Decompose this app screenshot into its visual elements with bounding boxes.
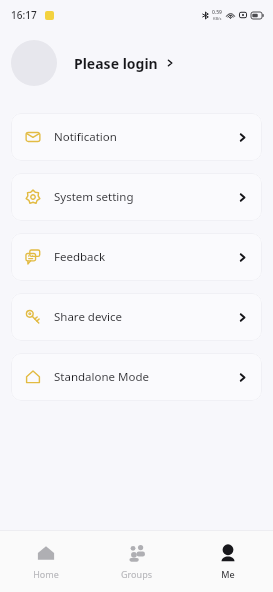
button[interactable]: Me (182, 531, 273, 592)
staticText: Notification (54, 129, 117, 145)
staticText: 16:17 (11, 8, 37, 22)
staticText: Standalone Mode (54, 369, 150, 385)
button[interactable]: Notification (11, 113, 262, 161)
button[interactable]: Share device (11, 293, 262, 341)
staticText: Home (33, 568, 59, 580)
staticText: Please login (74, 54, 158, 73)
button[interactable]: Home (0, 531, 91, 592)
button[interactable]: Feedback (11, 233, 262, 281)
button[interactable]: Groups (91, 531, 182, 592)
staticText: Groups (121, 568, 152, 580)
button[interactable]: Please login (0, 30, 273, 96)
staticText: System setting (54, 189, 134, 205)
button[interactable]: Standalone Mode (11, 353, 262, 401)
staticText: Feedback (54, 249, 106, 265)
button[interactable]: System setting (11, 173, 262, 221)
staticText: KB/s (213, 16, 222, 21)
staticText: Me (221, 568, 235, 580)
staticText: Share device (54, 309, 123, 325)
staticText: 0.59 (212, 9, 222, 16)
